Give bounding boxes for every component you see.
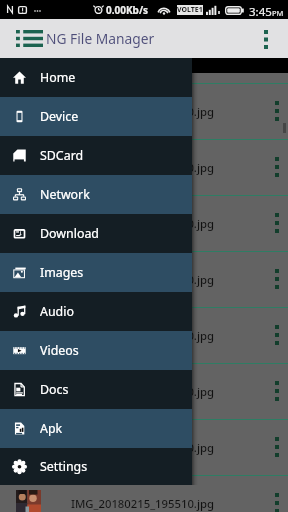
staticText: IMG_20180215_195510.jpg: [71, 216, 214, 231]
staticText: 2.21 MB | 2018-02-15: [71, 456, 156, 467]
button[interactable]: SDCard: [0, 136, 192, 175]
button[interactable]: File options: [270, 209, 284, 237]
staticText: Home: [40, 69, 76, 86]
staticText: IMG_20180215_195510.jpg: [71, 440, 214, 455]
staticText: 0.00Kb/s: [106, 3, 149, 17]
staticText: Device: [40, 108, 79, 125]
staticText: PM: [272, 8, 284, 18]
button[interactable]: Videos: [0, 331, 192, 370]
staticText: Videos: [40, 342, 79, 359]
staticText: VOLTE1: [177, 5, 203, 15]
staticText: 2.21 MB | 2018-02-15: [71, 344, 156, 355]
button[interactable]: Home: [0, 58, 192, 97]
button[interactable]: File options: [270, 377, 284, 405]
staticText: 2.21 MB | 2018-02-15: [71, 120, 156, 131]
button[interactable]: Images: [0, 253, 192, 292]
staticText: 2.21 MB | 2018-02-15: [71, 288, 156, 299]
staticText: IMG_20180215_195510.jpg: [71, 328, 214, 343]
button[interactable]: IMG_20180215_195510.jpg: [0, 363, 288, 419]
staticText: 2.21 MB | 2018-02-15: [71, 400, 156, 411]
button[interactable]: File options: [270, 153, 284, 181]
staticText: IMG_20180215_195510.jpg: [71, 104, 214, 119]
button[interactable]: IMG_20180215_195510.jpg: [0, 251, 288, 307]
staticText: Images: [40, 264, 84, 281]
staticText: 3:45: [249, 4, 272, 20]
button[interactable]: File options: [270, 433, 284, 461]
button[interactable]: File options: [270, 321, 284, 349]
staticText: Audio: [40, 303, 74, 320]
button[interactable]: IMG_20180215_195510.jpg: [0, 195, 288, 251]
staticText: IMG_20180215_195510.jpg: [71, 496, 214, 511]
button[interactable]: IMG_20180215_195510.jpg: [0, 83, 288, 139]
button[interactable]: More options: [253, 26, 279, 52]
button[interactable]: IMG_20180215_195510.jpg: [0, 139, 288, 195]
button[interactable]: Docs: [0, 370, 192, 409]
staticText: Network: [40, 186, 90, 203]
staticText: IMG_20180215_195510.jpg: [71, 384, 214, 399]
staticText: Settings: [40, 458, 88, 475]
button[interactable]: Audio: [0, 292, 192, 331]
staticText: SDCard: [40, 147, 84, 164]
button[interactable]: File options: [270, 97, 284, 125]
button[interactable]: Download: [0, 214, 192, 253]
button[interactable]: File options: [270, 265, 284, 293]
staticText: 2.21 MB | 2018-02-15: [71, 232, 156, 243]
button[interactable]: Settings: [0, 448, 192, 485]
button[interactable]: IMG_20180215_195510.jpg: [0, 307, 288, 363]
staticText: IMG_20180215_195510.jpg: [71, 272, 214, 287]
button[interactable]: Device: [0, 97, 192, 136]
staticText: IMG_20180215_195510.jpg: [71, 160, 214, 175]
button[interactable]: IMG_20180215_195510.jpg: [0, 475, 288, 512]
staticText: Docs: [40, 381, 69, 398]
button[interactable]: Open navigation drawer: [9, 22, 50, 55]
button[interactable]: IMG_20180215_195510.jpg: [0, 419, 288, 475]
staticText: NG File Manager: [46, 29, 155, 48]
button[interactable]: Apk: [0, 409, 192, 448]
button[interactable]: Network: [0, 175, 192, 214]
staticText: Download: [40, 225, 99, 242]
button[interactable]: File options: [270, 489, 284, 512]
staticText: Apk: [40, 420, 63, 437]
